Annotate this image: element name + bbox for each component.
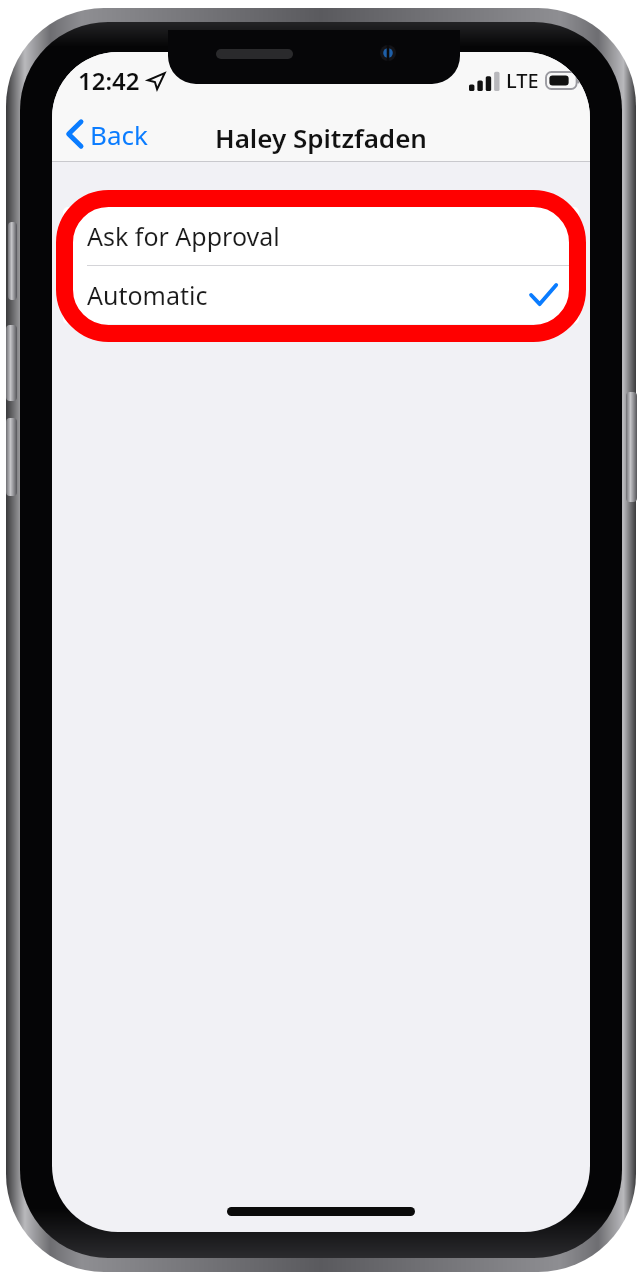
other: Selected: [530, 283, 557, 307]
staticText: Haley Spitzfaden: [215, 120, 427, 155]
staticText: Ask for Approval: [87, 219, 280, 253]
button[interactable]: Back: [60, 110, 155, 158]
button[interactable]: Automatic: [63, 266, 579, 324]
staticText: 12:42: [78, 64, 140, 97]
staticText: Automatic: [87, 278, 208, 312]
button[interactable]: Ask for Approval: [63, 207, 579, 265]
staticText: Back: [90, 117, 148, 152]
staticText: LTE: [506, 67, 539, 94]
